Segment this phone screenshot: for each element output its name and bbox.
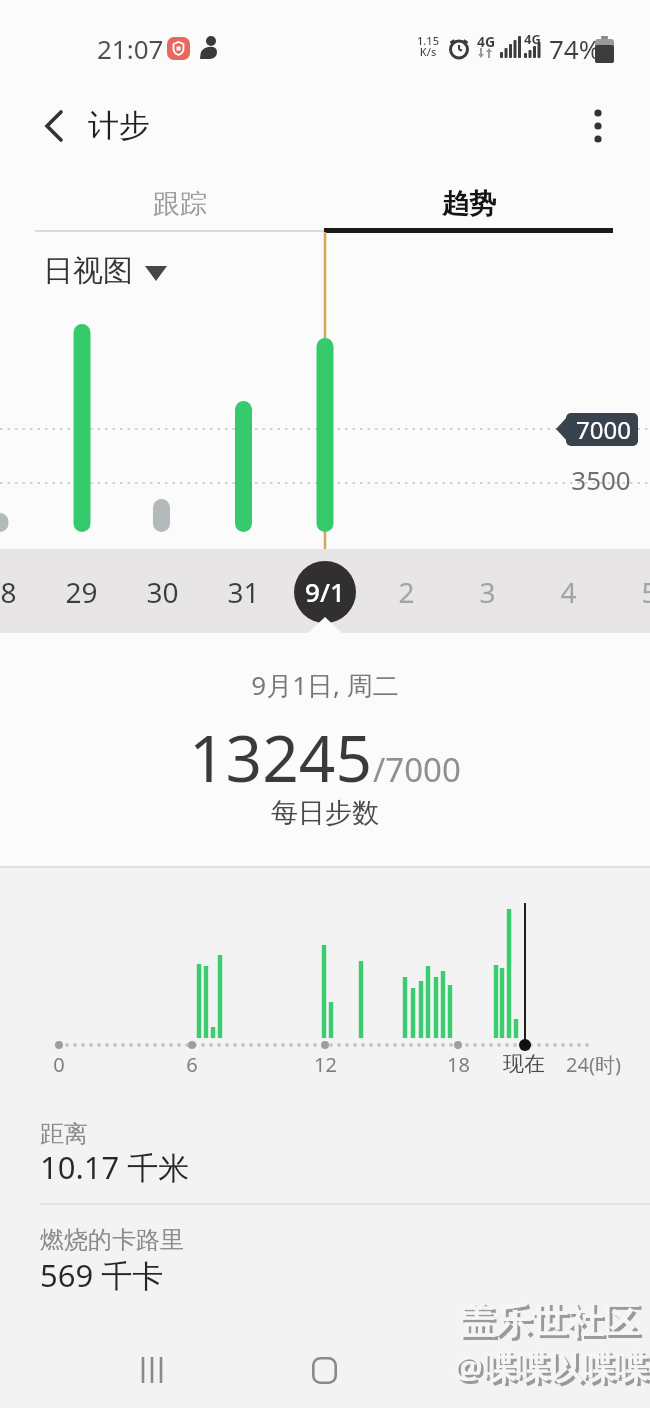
staticText: 10.17 千米 — [40, 1146, 190, 1188]
staticText: 30 — [146, 573, 179, 611]
button[interactable] — [365, 549, 446, 633]
staticText: 4G — [477, 32, 496, 51]
staticText: 9/1 — [305, 574, 345, 609]
button[interactable] — [446, 549, 527, 633]
button[interactable] — [464, 1340, 528, 1400]
button[interactable]: 日视图 — [43, 252, 155, 290]
staticText: 3 — [479, 573, 496, 611]
staticText: 569 千卡 — [40, 1254, 164, 1296]
staticText: 24(时) — [566, 1051, 621, 1078]
button[interactable] — [28, 100, 80, 152]
button[interactable] — [294, 561, 356, 623]
staticText: 9月1日, 周二 — [251, 667, 399, 703]
staticText: 跟踪 — [153, 187, 207, 221]
staticText: @喋喋以喋喋 — [453, 1344, 648, 1389]
staticText: 1.15 K/s — [410, 33, 446, 60]
staticText: 趋势 — [442, 187, 496, 221]
staticText: 燃烧的卡路里 — [40, 1225, 184, 1255]
button[interactable] — [292, 1340, 356, 1400]
button[interactable]: 趋势 — [325, 181, 613, 227]
button[interactable] — [120, 1340, 184, 1400]
button[interactable] — [41, 549, 122, 633]
staticText: 计步 — [88, 106, 150, 145]
staticText: /7000 — [373, 747, 461, 792]
staticText: 日视图 — [43, 252, 133, 290]
button[interactable] — [527, 549, 608, 633]
staticText: 28 — [0, 573, 17, 611]
button[interactable] — [203, 549, 284, 633]
staticText: 5 — [641, 573, 650, 611]
staticText: 现在 — [503, 1051, 545, 1077]
staticText: 18 — [447, 1051, 470, 1078]
staticText: 74% — [549, 31, 601, 66]
button[interactable] — [608, 549, 650, 633]
staticText: 4G — [524, 30, 541, 48]
staticText: 6 — [186, 1051, 198, 1078]
staticText: 距离 — [40, 1119, 88, 1149]
staticText: 每日步数 — [271, 796, 379, 830]
staticText: @喋喋以喋喋 — [456, 1347, 650, 1392]
button[interactable] — [284, 549, 365, 633]
button[interactable] — [122, 549, 203, 633]
staticText: 盖乐世社区 — [462, 1301, 642, 1346]
button[interactable] — [572, 100, 624, 152]
staticText: 2 — [398, 573, 415, 611]
staticText: 0 — [53, 1051, 65, 1078]
staticText: 7000 — [576, 413, 631, 446]
staticText: 3500 — [571, 462, 631, 497]
staticText: 31 — [227, 573, 260, 611]
staticText: 29 — [65, 573, 98, 611]
staticText: 4 — [560, 573, 577, 611]
staticText: 盖乐世社区 — [459, 1298, 639, 1343]
button[interactable]: 跟踪 — [35, 181, 325, 227]
staticText: 21:07 — [97, 31, 164, 66]
staticText: 12 — [314, 1051, 337, 1078]
staticText: 13245 — [189, 714, 373, 801]
